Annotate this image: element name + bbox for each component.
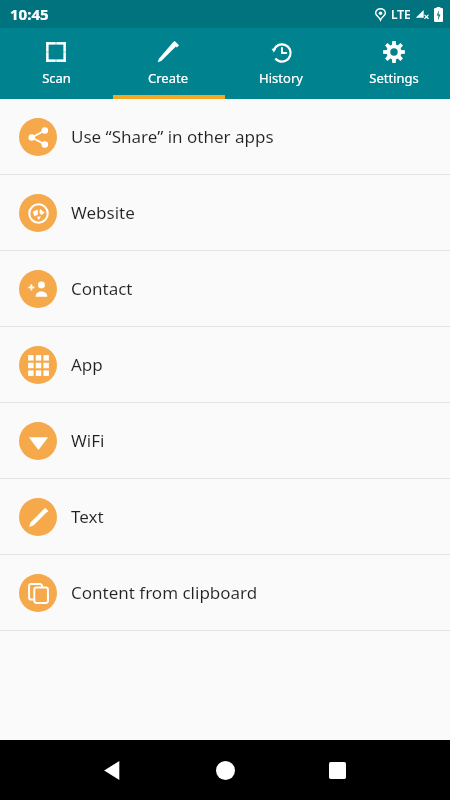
other: App — [19, 346, 57, 384]
staticText: LTE — [391, 6, 411, 22]
staticText: Scan — [42, 69, 71, 87]
button[interactable]: Share — [0, 99, 450, 174]
button[interactable]: Back — [82, 740, 142, 800]
staticText: WiFi — [71, 429, 105, 452]
staticText: Website — [71, 201, 135, 224]
staticText: Contact — [71, 277, 133, 300]
other: Clipboard — [19, 574, 57, 612]
staticText: App — [71, 353, 103, 376]
other: Text — [19, 498, 57, 536]
other: WiFi — [19, 422, 57, 460]
button[interactable]: Text — [0, 479, 450, 554]
button[interactable]: Home — [195, 740, 255, 800]
button[interactable]: Website — [0, 175, 450, 250]
other: Share — [19, 118, 57, 156]
staticText: Create — [148, 69, 188, 87]
staticText: Use “Share” in other apps — [71, 125, 274, 148]
button[interactable]: WiFi — [0, 403, 450, 478]
button[interactable]: Settings — [337, 28, 450, 99]
staticText: Settings — [369, 69, 419, 87]
button[interactable]: Scan — [0, 28, 112, 99]
other: Website — [19, 194, 57, 232]
button[interactable]: Contact — [0, 251, 450, 326]
staticText: Text — [71, 505, 104, 528]
other: Contact — [19, 270, 57, 308]
button[interactable]: App — [0, 327, 450, 402]
staticText: History — [259, 69, 303, 87]
button[interactable]: Recent apps — [307, 740, 367, 800]
button[interactable]: Create — [112, 28, 224, 99]
button[interactable]: History — [224, 28, 337, 99]
staticText: Content from clipboard — [71, 581, 258, 604]
staticText: 10:45 — [10, 4, 49, 24]
button[interactable]: Clipboard — [0, 555, 450, 630]
